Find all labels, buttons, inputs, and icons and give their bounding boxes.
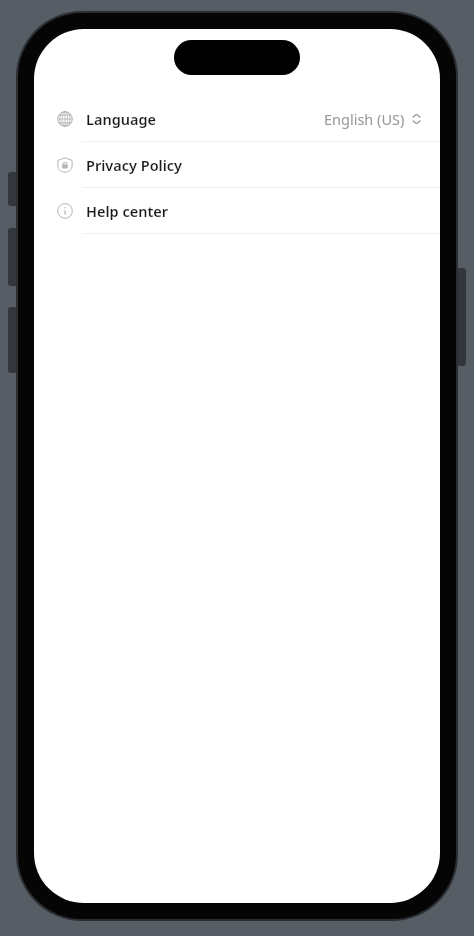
staticText: Language [86,109,157,129]
other: Privacy Policy [56,156,74,174]
button[interactable]: Help center [34,188,440,233]
staticText: English (US) [324,109,405,129]
button[interactable]: Privacy Policy [34,142,440,187]
staticText: Help center [86,201,169,221]
other: Help center [56,202,74,220]
staticText: Privacy Policy [86,155,183,175]
other: Language [56,110,74,128]
button[interactable]: Language [34,96,440,141]
